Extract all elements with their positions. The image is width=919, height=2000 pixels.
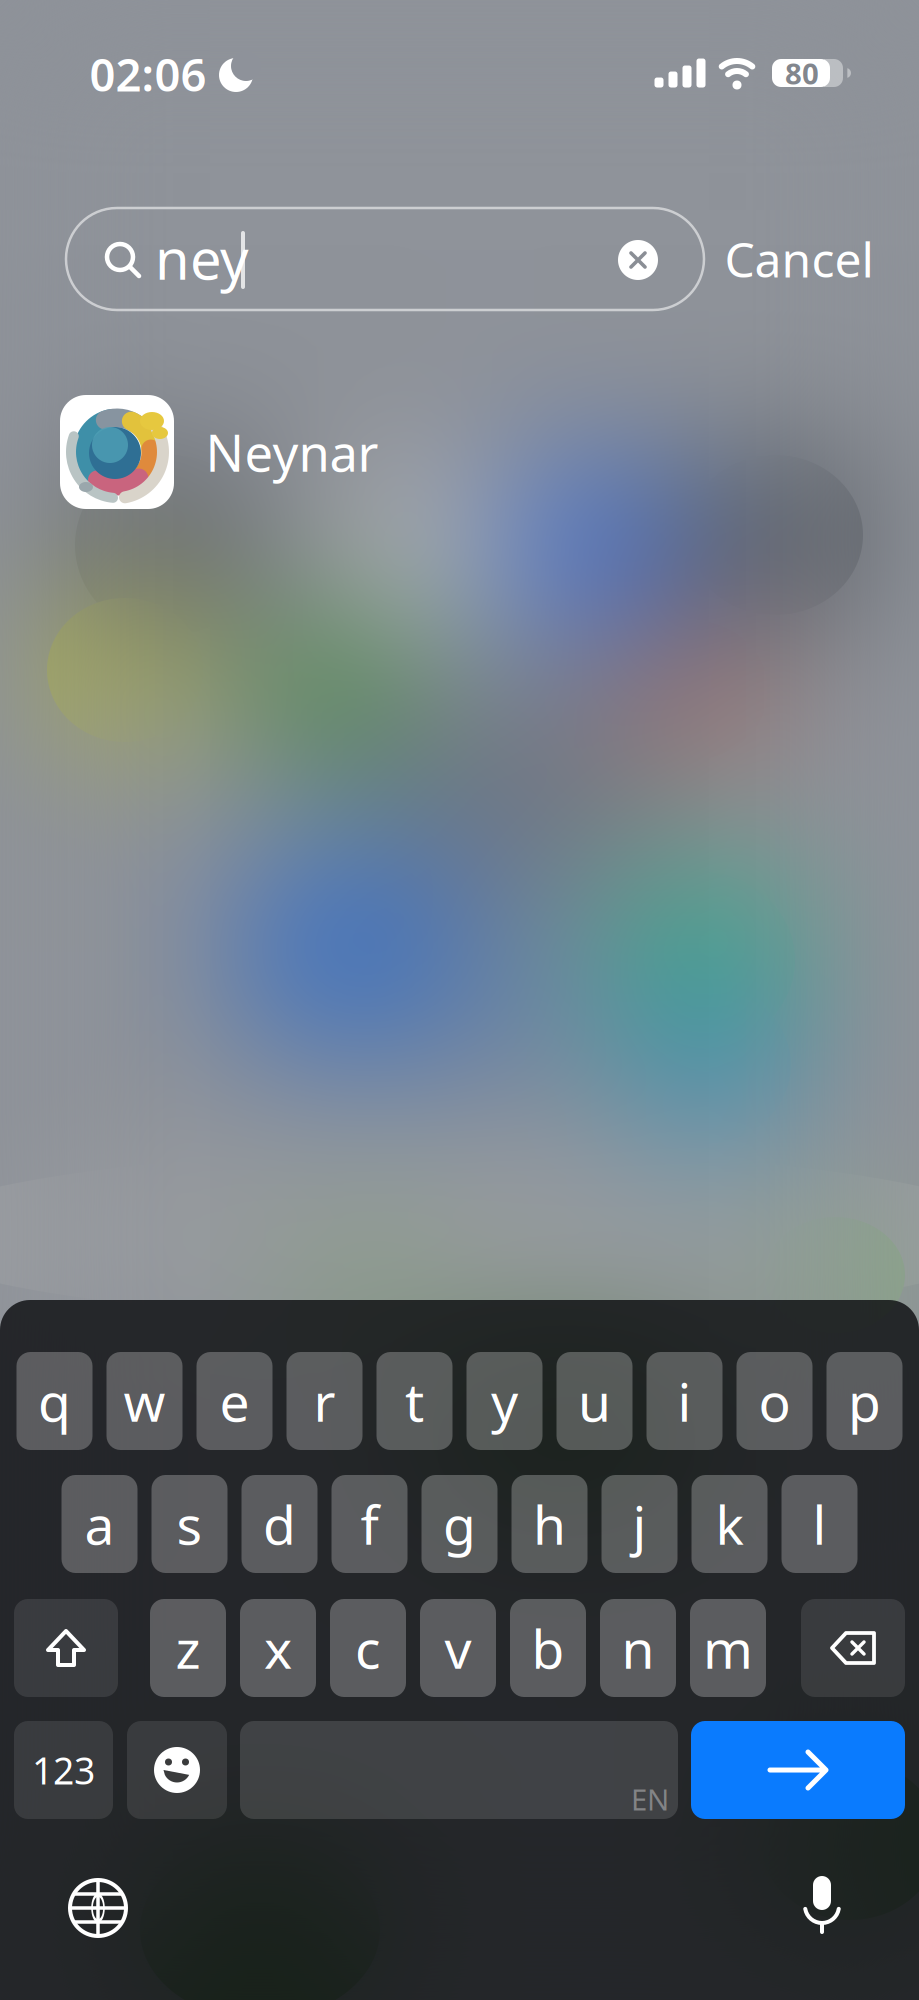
staticText: g [443, 1489, 476, 1559]
button[interactable]: s [151, 1475, 227, 1573]
staticText: q [38, 1366, 71, 1436]
staticText: k [715, 1489, 743, 1559]
button[interactable]: Dictate [797, 1876, 847, 1934]
staticText: c [355, 1613, 381, 1683]
button[interactable]: c [330, 1599, 406, 1697]
button[interactable]: Neynar [60, 395, 919, 509]
button[interactable]: x [240, 1599, 316, 1697]
button[interactable]: Search [66, 208, 704, 310]
button[interactable]: t [376, 1352, 452, 1450]
button[interactable]: h [511, 1475, 587, 1573]
staticText: l [812, 1489, 826, 1559]
staticText: n [621, 1613, 654, 1683]
staticText: h [533, 1489, 566, 1559]
button[interactable]: Emoji [127, 1721, 227, 1819]
button[interactable]: e [196, 1352, 272, 1450]
staticText: e [219, 1366, 249, 1436]
staticText: o [758, 1366, 790, 1436]
button[interactable]: Next keyboard [68, 1878, 128, 1938]
staticText: r [313, 1366, 335, 1436]
staticText: 80 [785, 53, 819, 92]
staticText: x [264, 1613, 292, 1683]
staticText: f [360, 1489, 378, 1559]
button[interactable]: q [16, 1352, 92, 1450]
button[interactable]: z [150, 1599, 226, 1697]
button[interactable]: m [690, 1599, 766, 1697]
button[interactable]: p [826, 1352, 902, 1450]
staticText: z [175, 1613, 200, 1683]
button[interactable]: k [691, 1475, 767, 1573]
staticText: i [677, 1366, 691, 1436]
staticText: Neynar [205, 418, 378, 486]
button[interactable]: r [286, 1352, 362, 1450]
button[interactable]: u [556, 1352, 632, 1450]
staticText: j [632, 1489, 646, 1559]
staticText: EN [631, 1779, 669, 1818]
button[interactable]: i [646, 1352, 722, 1450]
staticText: a [84, 1489, 114, 1559]
staticText: d [263, 1489, 296, 1559]
staticText: y [491, 1366, 518, 1436]
staticText: b [531, 1613, 564, 1683]
staticText: u [578, 1366, 611, 1436]
button[interactable]: Numbers [14, 1721, 113, 1819]
button[interactable]: w [106, 1352, 182, 1450]
button[interactable]: Space [240, 1721, 678, 1819]
button[interactable]: g [421, 1475, 497, 1573]
staticText: s [176, 1489, 202, 1559]
staticText: v [444, 1613, 471, 1683]
button[interactable]: l [781, 1475, 857, 1573]
button[interactable]: a [61, 1475, 137, 1573]
staticText: Cancel [724, 227, 873, 291]
staticText: t [405, 1366, 424, 1436]
button[interactable]: y [466, 1352, 542, 1450]
button[interactable]: Shift [14, 1599, 118, 1697]
button[interactable]: f [331, 1475, 407, 1573]
staticText: 02:06 [89, 44, 206, 104]
button[interactable]: Clear text [618, 240, 658, 280]
staticText: p [848, 1366, 881, 1436]
button[interactable]: b [510, 1599, 586, 1697]
staticText: 123 [32, 1745, 95, 1795]
button[interactable]: d [241, 1475, 317, 1573]
staticText: ney [155, 221, 249, 295]
button[interactable]: o [736, 1352, 812, 1450]
button[interactable]: j [601, 1475, 677, 1573]
staticText: m [703, 1613, 753, 1683]
button[interactable]: n [600, 1599, 676, 1697]
staticText: w [123, 1366, 165, 1436]
button[interactable]: Delete [801, 1599, 905, 1697]
button[interactable]: Cancel [724, 227, 873, 291]
button[interactable]: v [420, 1599, 496, 1697]
button[interactable]: Go [691, 1721, 905, 1819]
